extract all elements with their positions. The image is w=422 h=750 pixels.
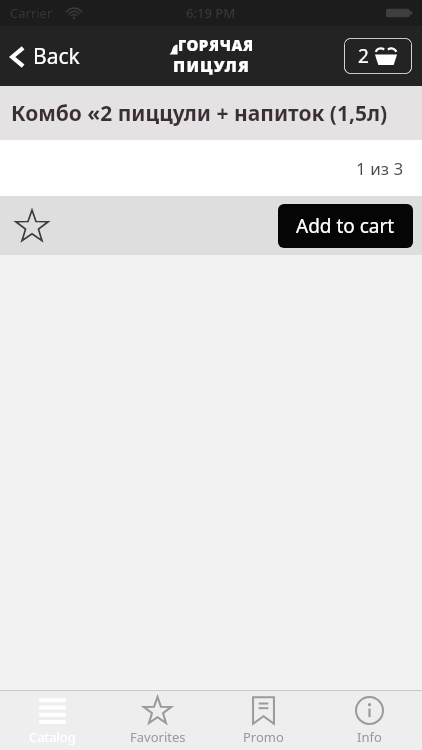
staticText: 6:19 PM xyxy=(186,4,236,22)
button[interactable]: Promo xyxy=(210,691,316,750)
button[interactable]: Cart, 2 items xyxy=(344,38,412,74)
staticText: Favorites xyxy=(130,728,186,746)
button[interactable]: Catalog xyxy=(0,691,105,750)
staticText: Carrier xyxy=(10,4,53,22)
button[interactable]: Add to cart xyxy=(278,204,413,248)
staticText: 1 из 3 xyxy=(356,157,404,180)
button[interactable]: Favorites xyxy=(105,691,210,750)
button[interactable]: Back xyxy=(0,36,92,77)
staticText: Back xyxy=(33,42,80,71)
staticText: Promo xyxy=(243,728,284,746)
button[interactable]: Info xyxy=(316,691,422,750)
staticText: Комбо «2 пиццули + напиток (1,5л) xyxy=(11,99,388,128)
staticText: Catalog xyxy=(29,728,76,746)
staticText: ГОРЯЧАЯ xyxy=(178,35,254,55)
staticText: ПИЦУЛЯ xyxy=(173,55,251,77)
staticText: Info xyxy=(357,728,382,746)
button[interactable]: Add to favorites xyxy=(6,200,58,252)
staticText: Add to cart xyxy=(296,213,395,239)
staticText: 2 xyxy=(358,43,369,69)
